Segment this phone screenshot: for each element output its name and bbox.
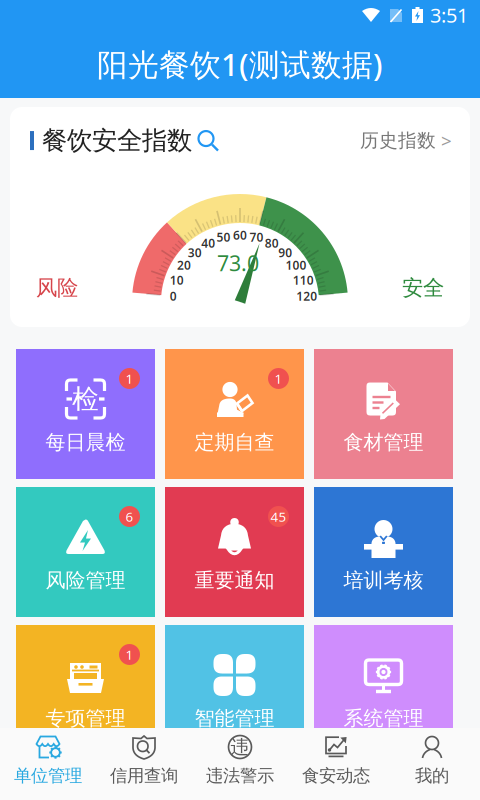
staticText: 智能管理 [194,706,274,731]
staticText: 安全 [402,275,444,301]
staticText: 40 [201,235,215,251]
staticText: 3:51 [430,2,468,28]
staticText: 食安动态 [302,765,370,786]
staticText: 我的 [415,765,449,786]
staticText: 违 [230,735,249,758]
staticText: 80 [265,235,279,251]
button[interactable]: 智能管理 [165,625,304,755]
staticText: 100 [285,257,306,273]
staticText: 单位管理 [14,765,82,786]
staticText: 历史指数 [360,129,436,152]
staticText: 食材管理 [343,430,423,455]
staticText: 培训考核 [343,568,423,593]
staticText: 60 [233,227,247,243]
staticText: 0 [170,288,177,304]
staticText: 信用查询 [110,765,178,786]
button[interactable]: 违 [192,728,288,800]
staticText: 70 [249,229,263,245]
button[interactable]: 信用查询 [96,728,192,800]
staticText: 重要通知 [194,568,274,593]
staticText: 20 [177,257,191,273]
staticText: 专项管理 [45,706,125,731]
staticText: 50 [217,229,231,245]
button[interactable]: 我的 [384,728,480,800]
button[interactable]: 系统管理 [314,625,453,755]
button[interactable]: 历史指数 [360,128,452,153]
staticText: 定期自查 [194,430,274,455]
staticText: 110 [293,272,314,288]
staticText: 违法警示 [206,765,274,786]
button[interactable]: 重要通知 [165,487,304,617]
button[interactable]: 定期自查 [165,349,304,479]
button[interactable]: 单位管理 [0,728,96,800]
staticText: 检 [72,383,99,415]
button[interactable]: 专项管理 [16,625,155,755]
staticText: 1 [125,370,133,387]
staticText: 每日晨检 [45,430,125,455]
staticText: 10 [170,272,184,288]
staticText: 30 [188,245,202,260]
staticText: > [441,128,452,153]
staticText: 6 [125,508,133,525]
staticText: 1 [125,646,133,663]
button[interactable]: 检 [16,349,155,479]
staticText: 45 [270,508,286,525]
staticText: 90 [278,245,292,260]
staticText: 风险管理 [45,568,125,593]
button[interactable]: 食安动态 [288,728,384,800]
staticText: 系统管理 [343,706,423,731]
staticText: 阳光餐饮1(测试数据) [97,44,383,84]
button[interactable]: 食材管理 [314,349,453,479]
button[interactable]: 培训考核 [314,487,453,617]
button[interactable]: 风险管理 [16,487,155,617]
staticText: 餐饮安全指数 [42,125,192,156]
staticText: 120 [296,288,317,304]
staticText: 1 [274,370,282,387]
staticText: 73.0 [217,249,259,277]
staticText: 风险 [36,275,78,301]
